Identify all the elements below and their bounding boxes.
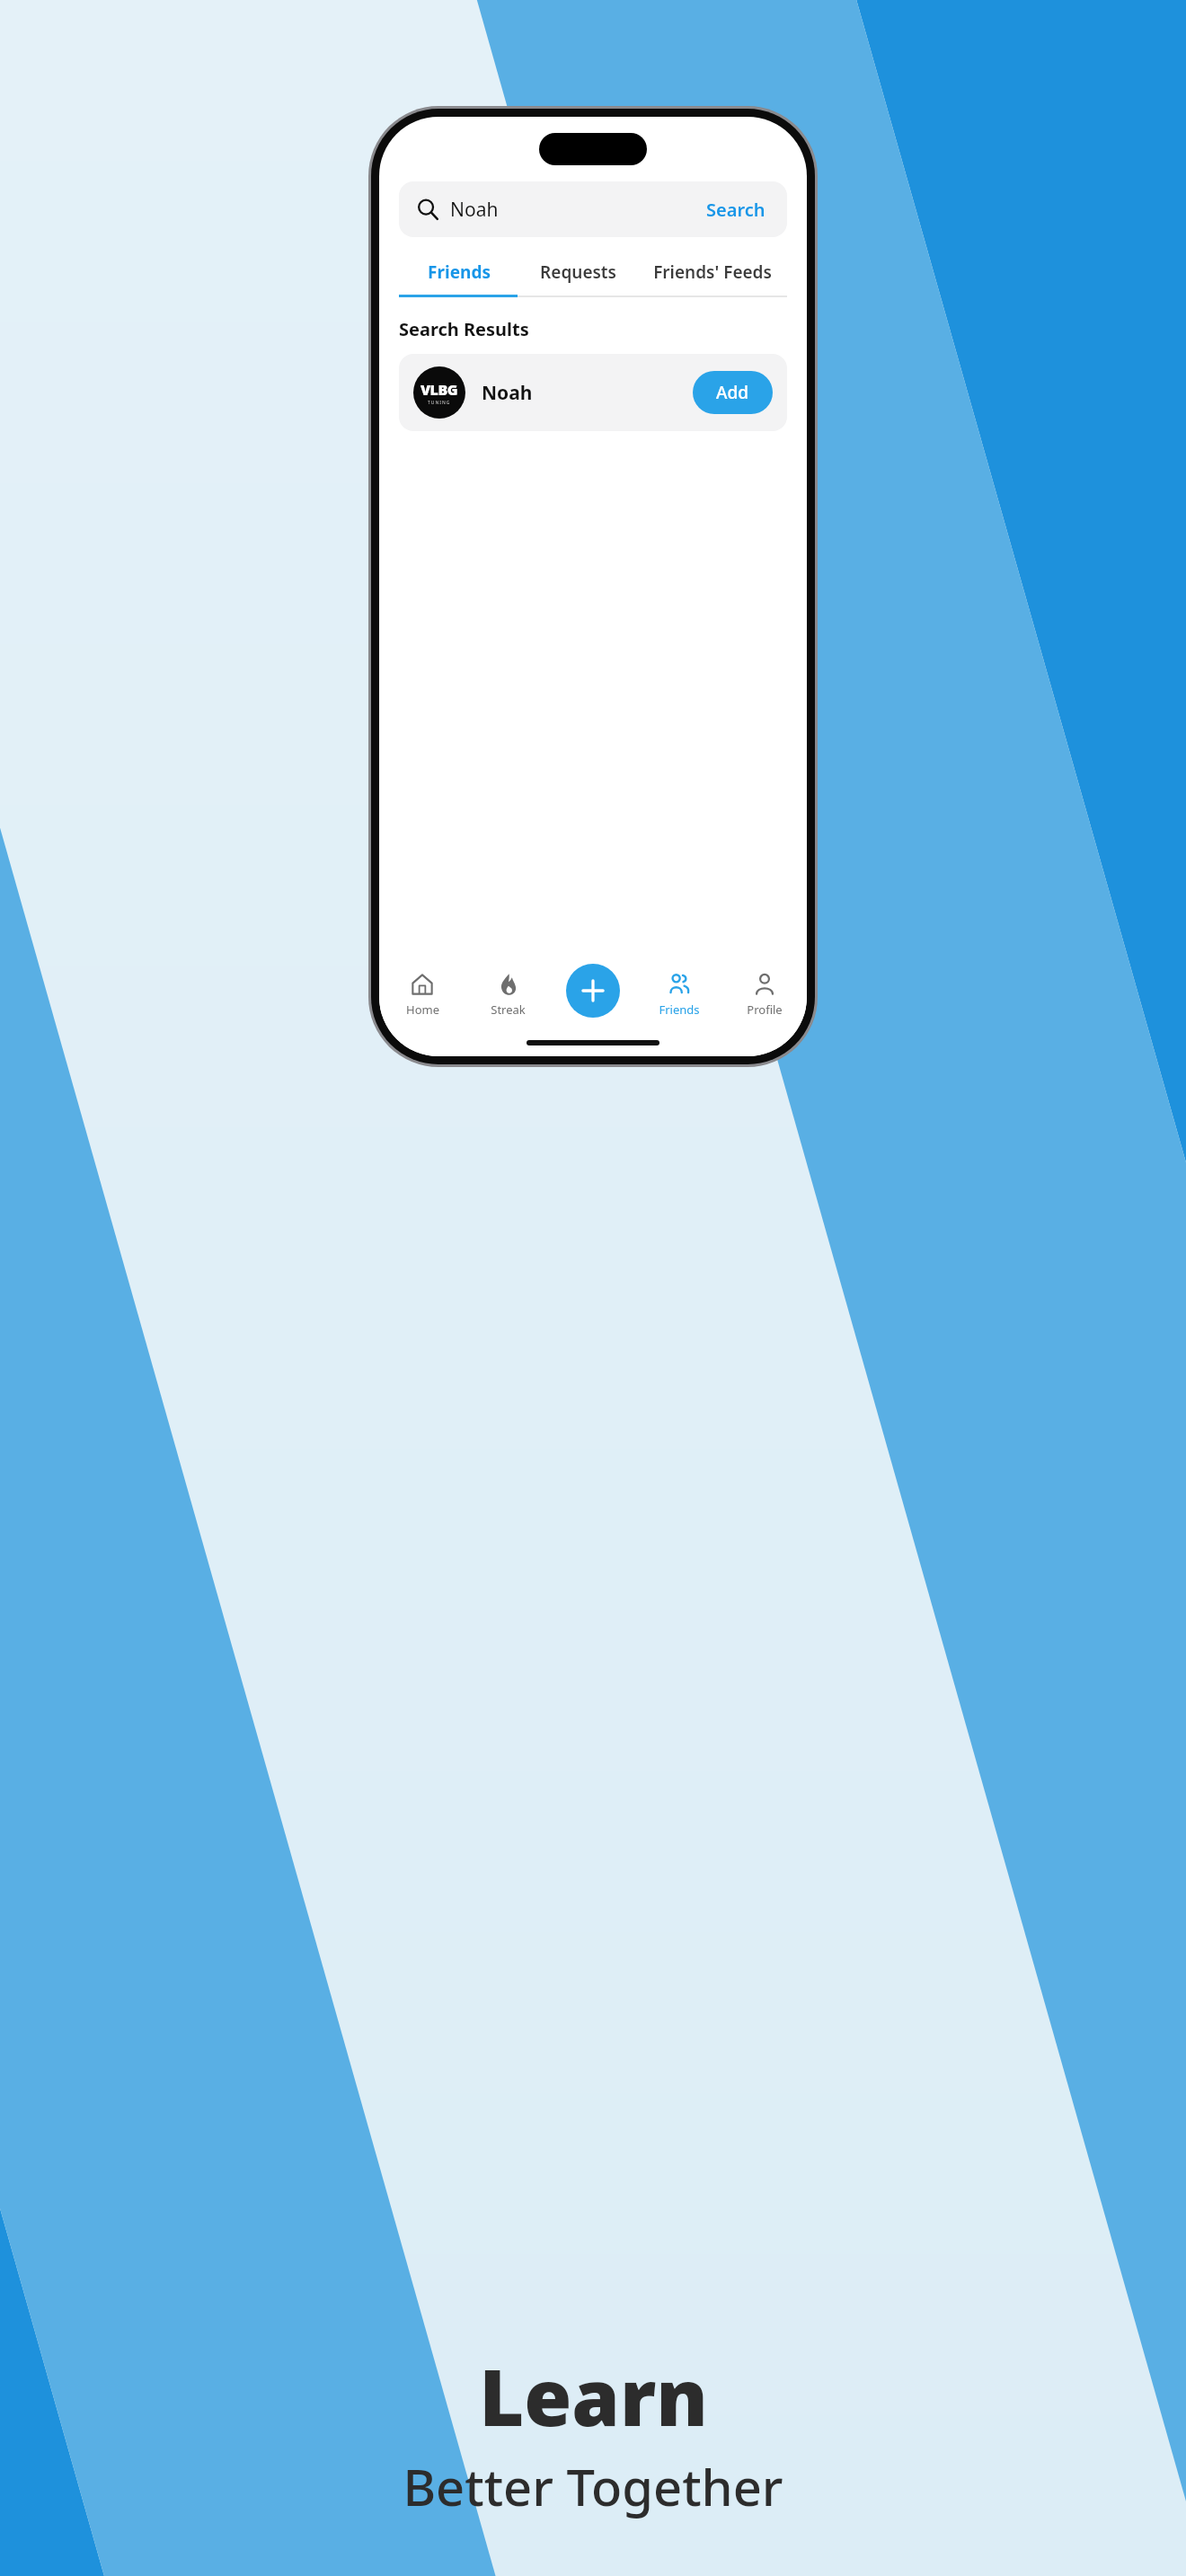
staticText: Noah <box>482 380 693 406</box>
staticText: Requests <box>540 260 616 284</box>
staticText: Add <box>716 381 749 404</box>
staticText: Friends <box>428 260 491 284</box>
button[interactable]: Streak <box>465 968 551 1021</box>
button[interactable]: Add <box>693 371 773 414</box>
staticText: Search Results <box>399 317 529 341</box>
button[interactable]: Create <box>566 964 620 1018</box>
button[interactable]: Friends <box>636 968 721 1021</box>
button[interactable]: VLBG <box>399 354 787 431</box>
button[interactable]: Friends <box>399 250 518 295</box>
staticText: Streak <box>491 1001 526 1018</box>
button[interactable]: Profile <box>721 968 807 1021</box>
button[interactable]: Home <box>379 968 465 1021</box>
button[interactable]: Search <box>703 194 769 225</box>
staticText: Search <box>706 198 766 222</box>
staticText: Learn <box>479 2343 708 2448</box>
staticText: Home <box>406 1001 439 1018</box>
button[interactable]: Requests <box>518 250 638 295</box>
staticText: Better Together <box>403 2452 783 2520</box>
staticText: Profile <box>747 1001 783 1018</box>
button[interactable]: Friends' Feeds <box>638 250 787 295</box>
staticText: Friends <box>659 1001 700 1018</box>
button[interactable]: Noah <box>399 181 787 237</box>
staticText: Friends' Feeds <box>653 260 772 284</box>
staticText: Noah <box>450 197 703 223</box>
staticText: TUNING <box>428 400 451 406</box>
staticText: VLBG <box>420 380 458 400</box>
